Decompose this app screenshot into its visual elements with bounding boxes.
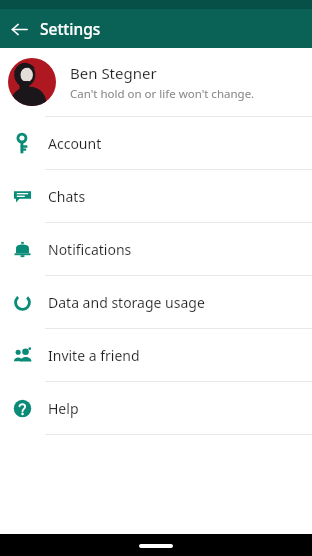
staticText: Help [48, 399, 79, 418]
button[interactable]: Invite a friend [0, 329, 312, 381]
staticText: Can't hold on or life won't change. [70, 86, 255, 102]
button[interactable]: Data and storage usage [0, 276, 312, 328]
staticText: Account [48, 134, 102, 153]
staticText: Settings [40, 18, 101, 39]
button[interactable]: Help [0, 382, 312, 434]
button[interactable]: Chats [0, 170, 312, 222]
button[interactable]: Account [0, 117, 312, 169]
button[interactable]: Back [2, 12, 36, 46]
staticText: Data and storage usage [48, 293, 205, 312]
staticText: Ben Stegner [70, 63, 157, 83]
button[interactable]: Ben Stegner [0, 48, 312, 116]
staticText: Chats [48, 187, 86, 206]
staticText: Notifications [48, 240, 132, 259]
staticText: Invite a friend [48, 346, 140, 365]
button[interactable]: Notifications [0, 223, 312, 275]
